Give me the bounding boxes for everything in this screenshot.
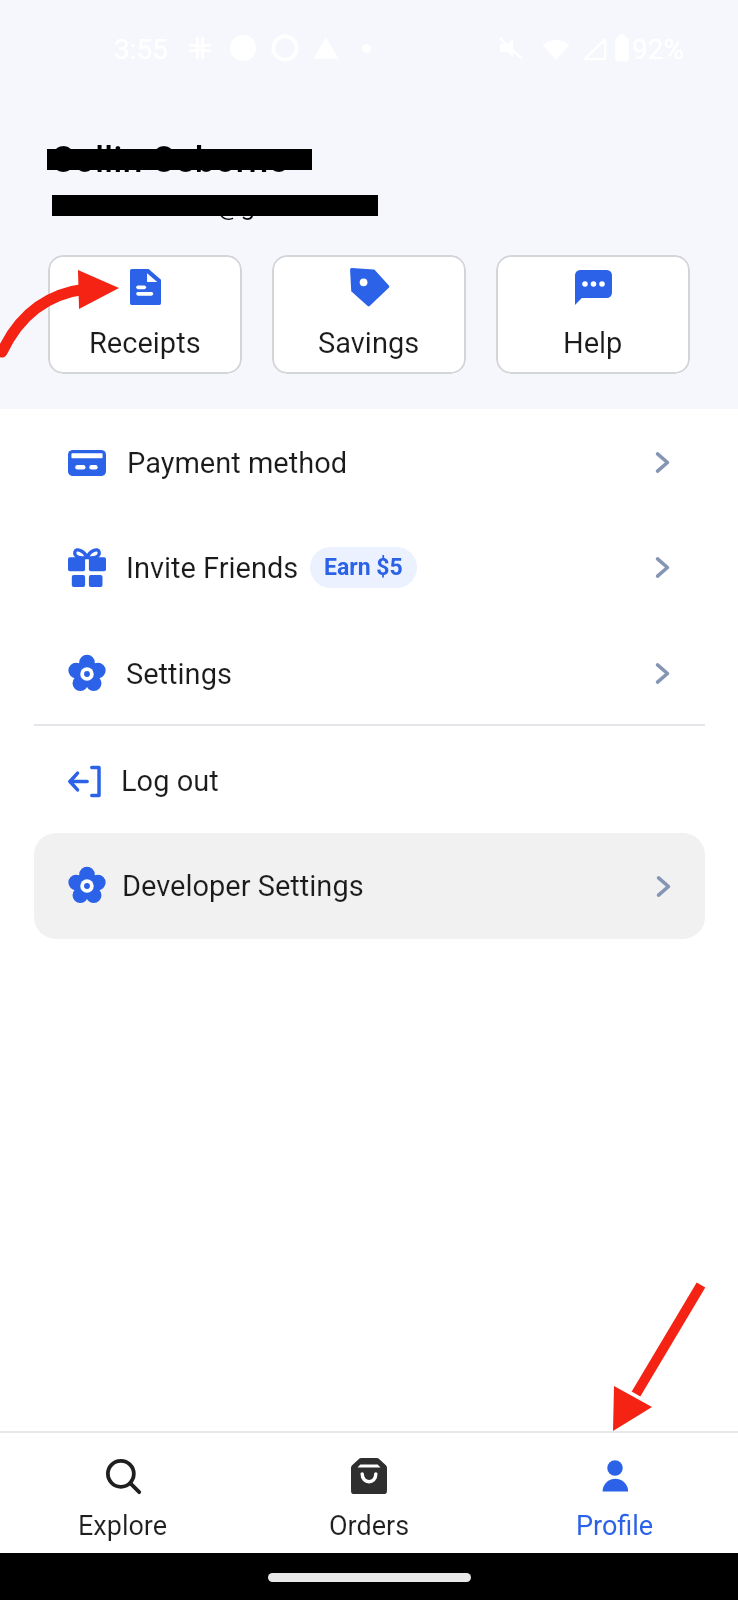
staticText: Settings (126, 657, 232, 691)
staticText: 92% (632, 33, 684, 66)
button[interactable]: Explore (0, 1433, 246, 1553)
button[interactable]: Invite Friends (0, 515, 738, 620)
staticText: Profile (576, 1510, 654, 1542)
staticText: Receipts (89, 326, 201, 360)
button[interactable]: Settings (0, 621, 738, 726)
staticText: Explore (78, 1510, 168, 1542)
other: Explore (105, 1458, 141, 1494)
staticText: Collin Osborne (51, 139, 288, 181)
button[interactable]: Receipts (48, 255, 242, 374)
staticText: Orders (329, 1510, 410, 1542)
button[interactable]: Orders (246, 1433, 492, 1553)
staticText: Invite Friends (126, 551, 299, 585)
other: Profile (597, 1458, 633, 1494)
staticText: Savings (318, 326, 420, 360)
staticText: Help (563, 326, 623, 360)
button[interactable]: Savings (272, 255, 466, 374)
button[interactable]: Developer Settings (34, 833, 705, 939)
staticText: 3:55 (114, 33, 168, 66)
staticText: Developer Settings (122, 869, 364, 903)
staticText: Earn $5 (324, 554, 403, 581)
button[interactable]: Payment method (0, 410, 738, 515)
button[interactable]: Help (496, 255, 690, 374)
button[interactable]: Log out (0, 728, 738, 833)
button[interactable]: Profile (492, 1433, 738, 1553)
staticText: Payment method (127, 446, 348, 480)
staticText: Log out (121, 764, 219, 798)
staticText: collin.osborne@gmail.com (54, 191, 363, 221)
other: Orders (351, 1458, 387, 1494)
